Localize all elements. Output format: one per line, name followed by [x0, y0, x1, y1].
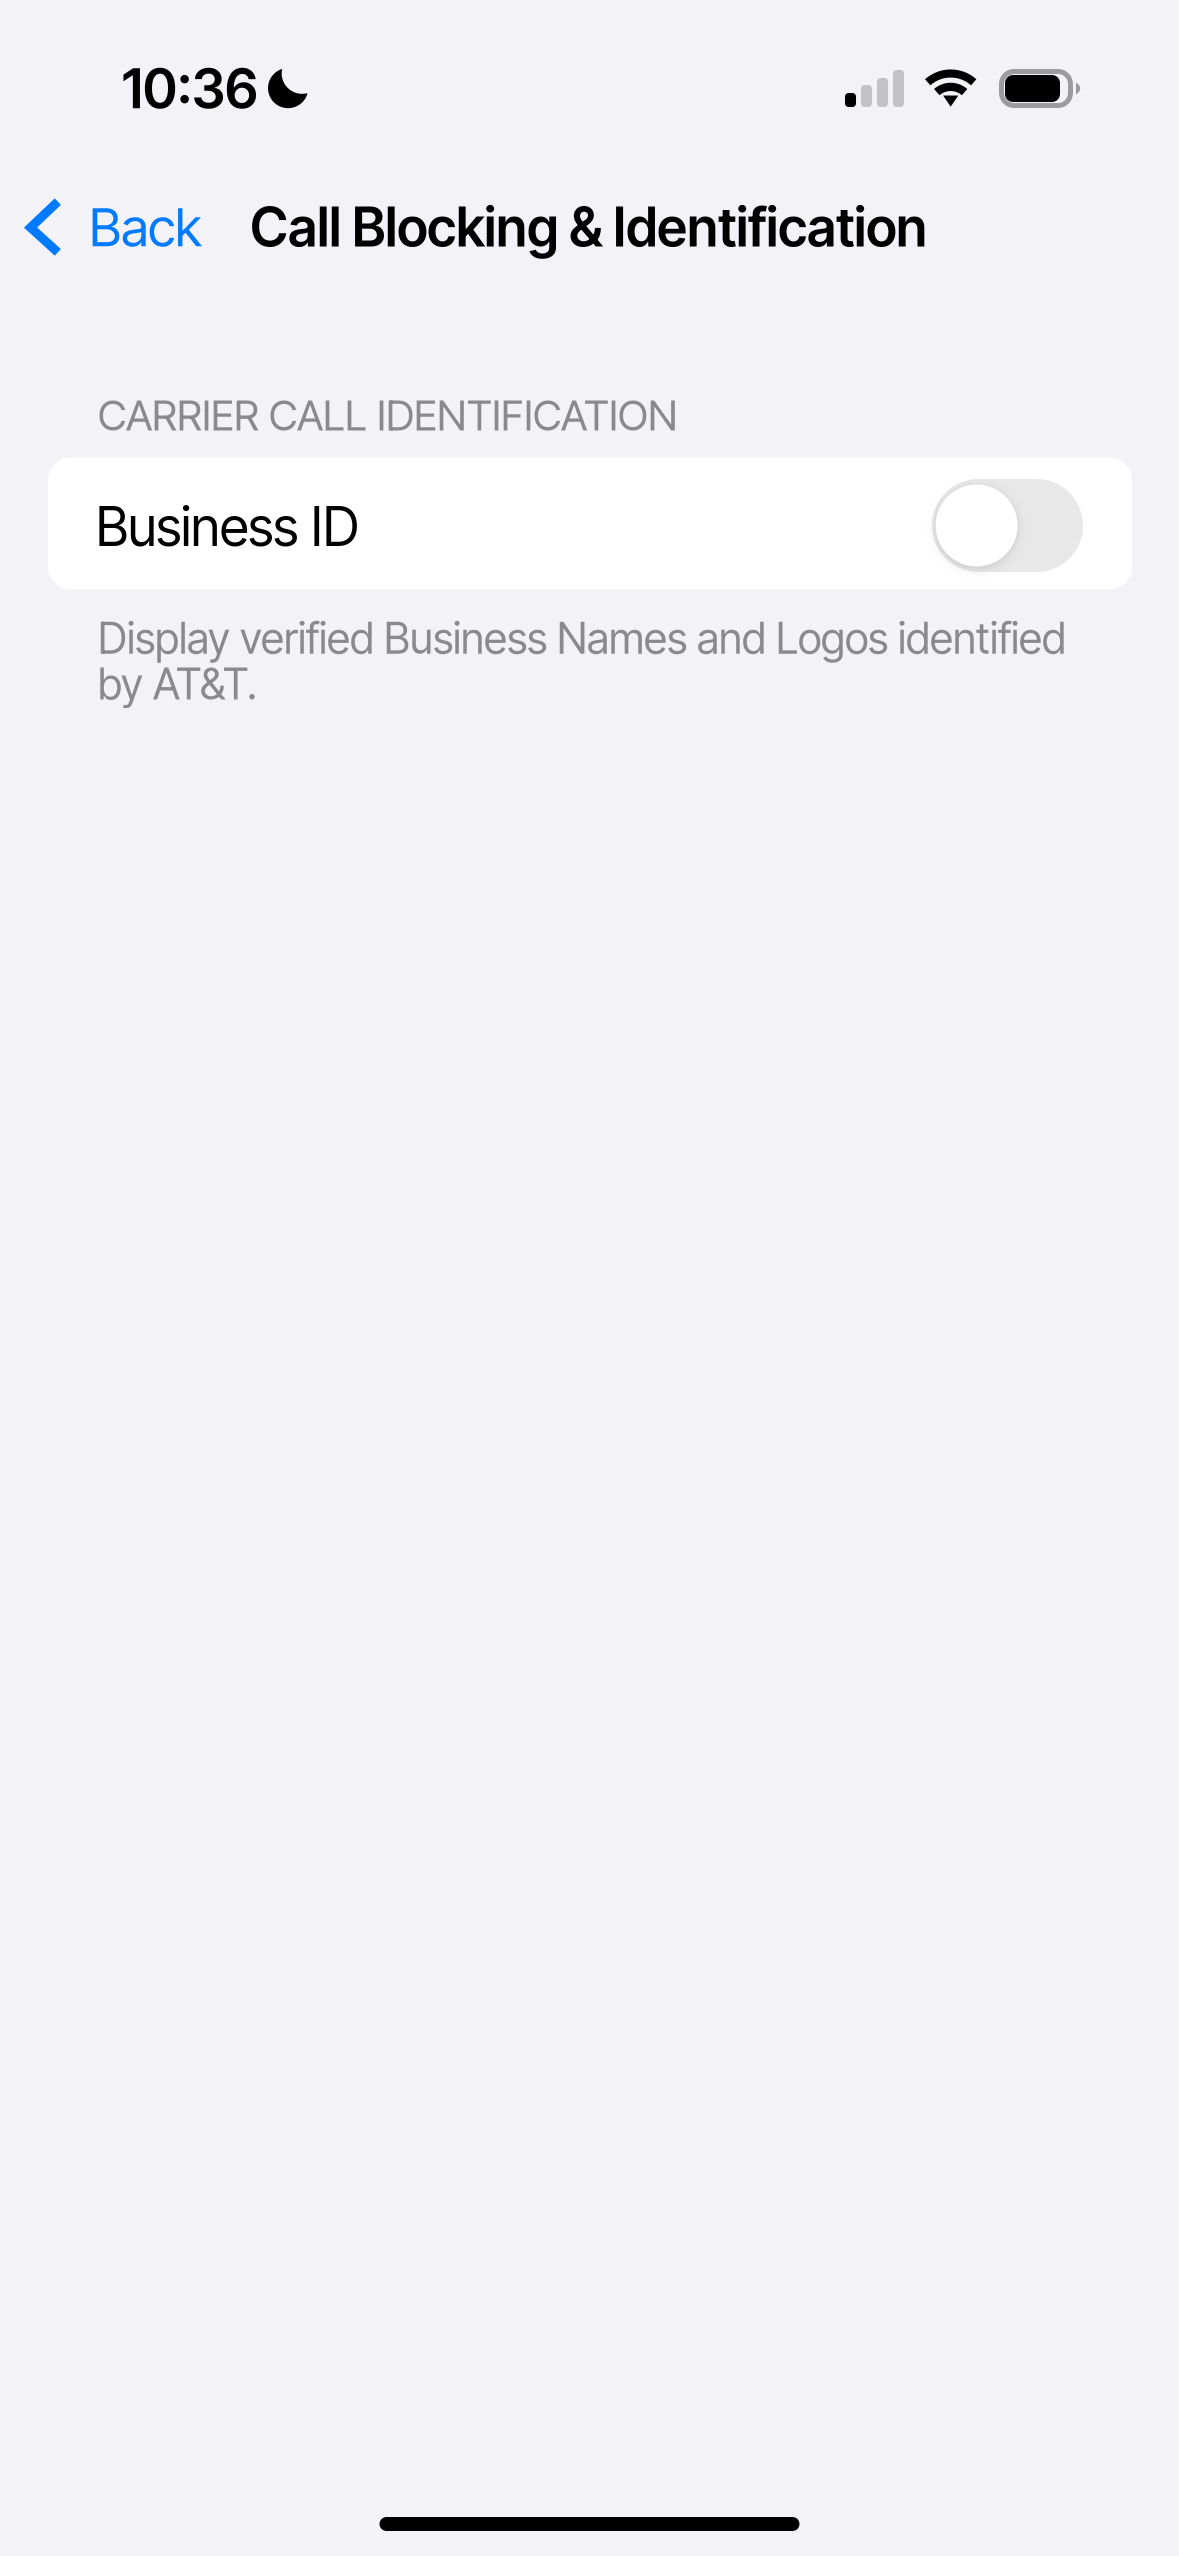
staticText: Business ID	[96, 494, 359, 559]
staticText: 10:36	[122, 56, 258, 121]
button[interactable]: Business ID	[48, 457, 1132, 589]
staticText: CARRIER CALL IDENTIFICATION	[98, 390, 678, 440]
staticText: Call Blocking & Identification	[250, 195, 927, 259]
button[interactable]: Back	[0, 177, 221, 277]
staticText: Display verified Business Names and Logo…	[98, 612, 1066, 710]
staticText: Back	[89, 195, 201, 259]
